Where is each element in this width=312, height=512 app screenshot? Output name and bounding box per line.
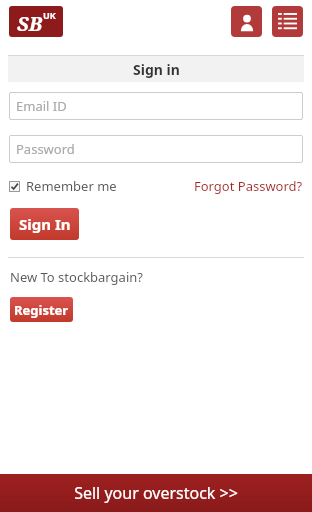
button[interactable]: Forgot Password?: [194, 177, 303, 195]
staticText: Email ID: [16, 97, 67, 115]
button[interactable]: Sign In: [10, 208, 79, 240]
button[interactable]: Register: [10, 297, 73, 322]
button[interactable]: Password: [9, 135, 303, 163]
button[interactable]: Sell your overstock >>: [0, 474, 312, 512]
staticText: Sell your overstock >>: [74, 482, 238, 504]
button[interactable]: Menu: [272, 6, 303, 37]
button[interactable]: SB: [9, 6, 63, 37]
button[interactable]: Account: [231, 6, 262, 37]
staticText: Forgot Password?: [194, 177, 303, 195]
staticText: New To stockbargain?: [10, 268, 143, 286]
staticText: Sign In: [19, 214, 71, 234]
staticText: SB: [17, 10, 43, 37]
button[interactable]: Email ID: [9, 92, 303, 120]
staticText: Password: [16, 140, 75, 158]
button[interactable]: Remember me: [9, 177, 117, 195]
staticText: Register: [14, 301, 69, 319]
staticText: Remember me: [26, 177, 117, 195]
staticText: UK: [43, 9, 56, 21]
staticText: Sign in: [133, 60, 180, 79]
